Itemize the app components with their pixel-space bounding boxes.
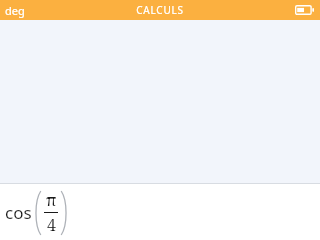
staticText: CALCULS xyxy=(136,3,184,17)
staticText: deg xyxy=(5,3,25,18)
other: Battery xyxy=(295,4,315,16)
button[interactable]: deg xyxy=(0,0,31,20)
staticText: cos xyxy=(5,201,32,224)
staticText: 4 xyxy=(47,214,56,236)
staticText: π xyxy=(46,189,57,211)
button[interactable]: cos xyxy=(0,184,320,240)
